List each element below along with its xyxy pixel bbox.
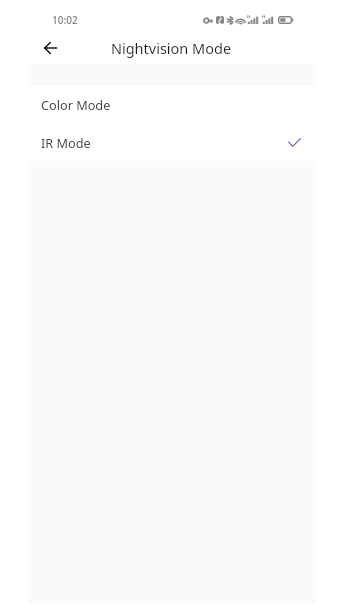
button[interactable]: Navigate up bbox=[38, 36, 62, 60]
staticText: 10:02 bbox=[52, 13, 78, 27]
staticText: Nightvision Mode bbox=[0, 38, 342, 58]
button[interactable]: IR Mode bbox=[0, 127, 342, 158]
staticText: IR Mode bbox=[41, 134, 91, 151]
button[interactable]: Color Mode bbox=[0, 89, 342, 120]
staticText: Color Mode bbox=[41, 96, 111, 113]
